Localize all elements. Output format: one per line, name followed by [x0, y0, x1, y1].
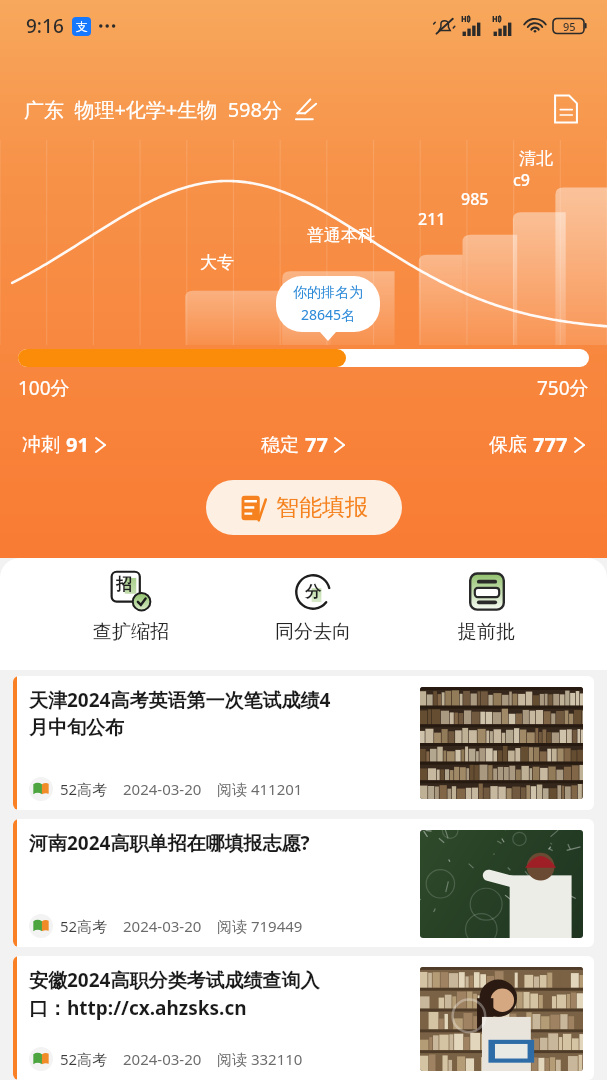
- staticText: 阅读 719449: [217, 916, 303, 936]
- staticText: 普通本科: [307, 225, 375, 246]
- button[interactable]: 河南2024高职单招在哪填报志愿?: [13, 819, 594, 947]
- staticText: 28645名: [301, 305, 356, 324]
- staticText: 100分: [18, 375, 70, 401]
- staticText: 招: [116, 575, 132, 595]
- button[interactable]: 保底: [489, 427, 585, 462]
- staticText: 2024-03-20: [123, 916, 202, 936]
- staticText: 2024-03-20: [123, 1049, 202, 1069]
- staticText: 阅读 332110: [217, 1049, 303, 1069]
- staticText: 985: [461, 188, 489, 210]
- staticText: 清北: [519, 148, 553, 169]
- button[interactable]: 广东 物理+化学+生物 598分: [24, 96, 282, 123]
- staticText: 同分去向: [275, 620, 351, 644]
- button[interactable]: 提前批: [444, 566, 529, 647]
- staticText: 52高考: [60, 1049, 108, 1069]
- staticText: 保底: [489, 433, 527, 457]
- staticText: 91: [66, 431, 89, 458]
- staticText: 提前批: [458, 620, 515, 644]
- staticText: 211: [418, 208, 446, 230]
- staticText: c9: [513, 169, 531, 191]
- button[interactable]: 智能填报: [206, 480, 402, 535]
- staticText: 查扩缩招: [93, 620, 169, 644]
- button[interactable]: 招: [79, 566, 183, 647]
- staticText: 52高考: [60, 916, 108, 936]
- button[interactable]: 稳定: [261, 427, 345, 462]
- staticText: 稳定: [261, 433, 299, 457]
- staticText: 支: [76, 19, 88, 34]
- staticText: 安徽2024高职分类考试成绩查询入 口：http://cx.ahzsks.cn: [29, 967, 320, 1021]
- staticText: 分: [305, 582, 321, 602]
- button[interactable]: 分: [261, 566, 365, 647]
- staticText: 你的排名为: [293, 284, 363, 302]
- button[interactable]: [18, 349, 589, 369]
- staticText: 77: [305, 431, 328, 458]
- button[interactable]: 你的排名为: [276, 276, 380, 332]
- staticText: 河南2024高职单招在哪填报志愿?: [29, 830, 310, 856]
- staticText: 750分: [537, 375, 589, 401]
- staticText: 9:16: [26, 13, 64, 39]
- staticText: 广东 物理+化学+生物 598分: [24, 96, 282, 123]
- staticText: 777: [533, 431, 568, 458]
- button[interactable]: 报告: [547, 90, 585, 128]
- staticText: 2024-03-20: [123, 779, 202, 799]
- button[interactable]: 冲刺: [22, 427, 106, 462]
- staticText: 智能填报: [276, 493, 368, 522]
- staticText: 大专: [200, 252, 234, 273]
- staticText: 52高考: [60, 779, 108, 799]
- button[interactable]: 编辑: [292, 94, 322, 124]
- staticText: 95: [563, 19, 576, 34]
- button[interactable]: 安徽2024高职分类考试成绩查询入 口：http://cx.ahzsks.cn: [13, 956, 594, 1080]
- staticText: 冲刺: [22, 433, 60, 457]
- staticText: 阅读 411201: [217, 779, 303, 799]
- button[interactable]: 天津2024高考英语第一次笔试成绩4 月中旬公布: [13, 676, 594, 810]
- staticText: 天津2024高考英语第一次笔试成绩4 月中旬公布: [29, 687, 331, 740]
